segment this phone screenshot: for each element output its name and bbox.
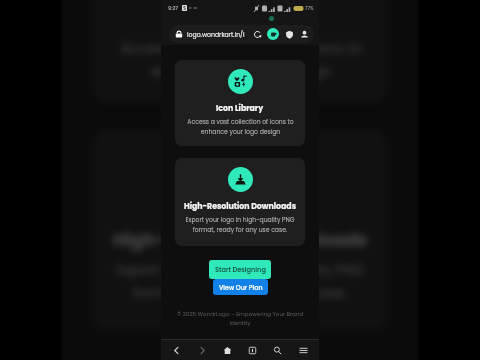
staticText: Start Designing	[215, 265, 266, 274]
staticText: © 2025 WondrLogo – Empowering Your Brand…	[173, 310, 307, 327]
staticText: Export your logo in high-quality PNG for…	[115, 262, 365, 303]
staticText: High-Resolution Downloads	[184, 201, 297, 212]
button[interactable]: logo.wondrkart.in/i	[169, 25, 314, 43]
staticText: Icon Library	[216, 103, 264, 114]
button[interactable]: Extensions	[267, 28, 279, 40]
button[interactable]: Home	[218, 341, 237, 360]
staticText: 9:27	[168, 5, 179, 12]
staticText: logo.wondrkart.in/i	[187, 30, 245, 39]
button[interactable]: Forward	[193, 341, 212, 360]
staticText: View Our Plan	[219, 283, 263, 292]
button[interactable]: Start Designing	[209, 260, 271, 279]
button[interactable]: Reload	[251, 28, 263, 40]
staticText: Icon Library	[185, 5, 294, 30]
button[interactable]: Profile	[298, 28, 310, 40]
button[interactable]: Menu	[294, 341, 313, 360]
button[interactable]: Back	[167, 341, 186, 360]
button[interactable]: High-Resolution Downloads	[175, 158, 305, 246]
staticText: Access a vast collection of icons to enh…	[120, 39, 363, 80]
button[interactable]: Tabs	[243, 341, 262, 360]
staticText: 77%	[305, 5, 314, 11]
button[interactable]: Search	[268, 341, 287, 360]
button[interactable]: View Our Plan	[213, 279, 268, 295]
staticText: S	[183, 5, 187, 11]
button[interactable]: Site security	[283, 28, 295, 40]
staticText: High-Resolution Downloads	[113, 228, 369, 253]
button[interactable]: High-Resolution Downloads	[92, 130, 387, 330]
button[interactable]: Icon Library	[175, 60, 305, 146]
staticText: Export your logo in high-quality PNG for…	[185, 216, 295, 234]
button[interactable]: Icon Library	[92, 0, 387, 103]
staticText: Access a vast collection of icons to enh…	[187, 118, 294, 136]
